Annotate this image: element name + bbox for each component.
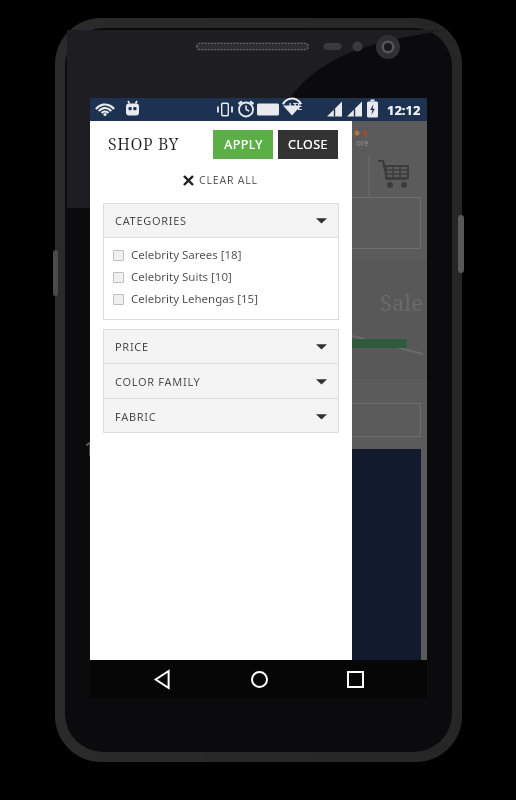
staticText: 1450	[84, 435, 130, 462]
staticText: LTE	[289, 101, 303, 112]
staticText: APPLY	[224, 136, 263, 153]
button[interactable]: Celebrity Lehengas [15]	[113, 288, 339, 310]
button[interactable]: PRICE	[103, 329, 339, 363]
staticText: PRICE	[115, 339, 149, 354]
button[interactable]: APPLY	[213, 130, 273, 159]
staticText: Sale	[380, 287, 423, 317]
button[interactable]: CLOSE	[278, 130, 338, 159]
staticText: CLOSE	[288, 136, 328, 153]
button[interactable]: Recents	[331, 660, 379, 698]
staticText: COLOR FAMILY	[115, 374, 201, 389]
button[interactable]: Home	[235, 660, 283, 698]
button[interactable]: CLEAR ALL	[90, 167, 352, 193]
staticText: CATEGORIES	[115, 213, 187, 228]
staticText: Celebrity Lehengas [15]	[131, 291, 258, 307]
button[interactable]: COLOR FAMILY	[103, 364, 339, 398]
button[interactable]: Celebrity Sarees [18]	[113, 244, 339, 266]
staticText: FABRIC	[115, 409, 157, 424]
staticText: SHOP BY	[108, 133, 180, 155]
button[interactable]: CATEGORIES	[103, 203, 339, 237]
staticText: Celebrity Sarees [18]	[131, 247, 242, 263]
button[interactable]: FABRIC	[103, 399, 339, 433]
staticText: ore	[356, 137, 369, 148]
staticText: CLEAR ALL	[199, 173, 258, 187]
staticText: 12:12	[387, 101, 421, 119]
button[interactable]: Celebrity Suits [10]	[113, 266, 339, 288]
staticText: Celebrity Suits [10]	[131, 269, 232, 285]
button[interactable]: Back	[138, 660, 186, 698]
